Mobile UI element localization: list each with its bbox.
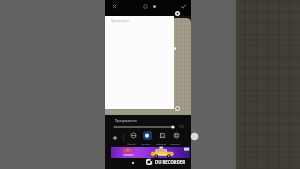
- button[interactable]: Поворот: [169, 130, 183, 144]
- button[interactable]: Обрезка: [155, 130, 169, 144]
- button[interactable]: Close: [109, 1, 120, 12]
- button[interactable]: Add layer: [110, 133, 120, 143]
- button[interactable]: Фильтр: [126, 130, 140, 144]
- staticText: 100: [179, 125, 184, 129]
- staticText: Поворот: [170, 142, 180, 145]
- staticText: Прозрач: [141, 142, 151, 145]
- staticText: Фильтр: [127, 142, 136, 145]
- staticText: Обрезка: [156, 142, 166, 145]
- button[interactable]: Layers: [149, 1, 160, 12]
- button[interactable]: Done: [178, 1, 189, 12]
- button[interactable]: Прозрач: [140, 130, 154, 144]
- staticText: Прозрачность: [115, 119, 137, 123]
- button[interactable]: [111, 147, 190, 158]
- button[interactable]: History: [140, 1, 151, 12]
- staticText: Время суток: [111, 19, 129, 23]
- staticText: DU RECORDER: [155, 159, 185, 165]
